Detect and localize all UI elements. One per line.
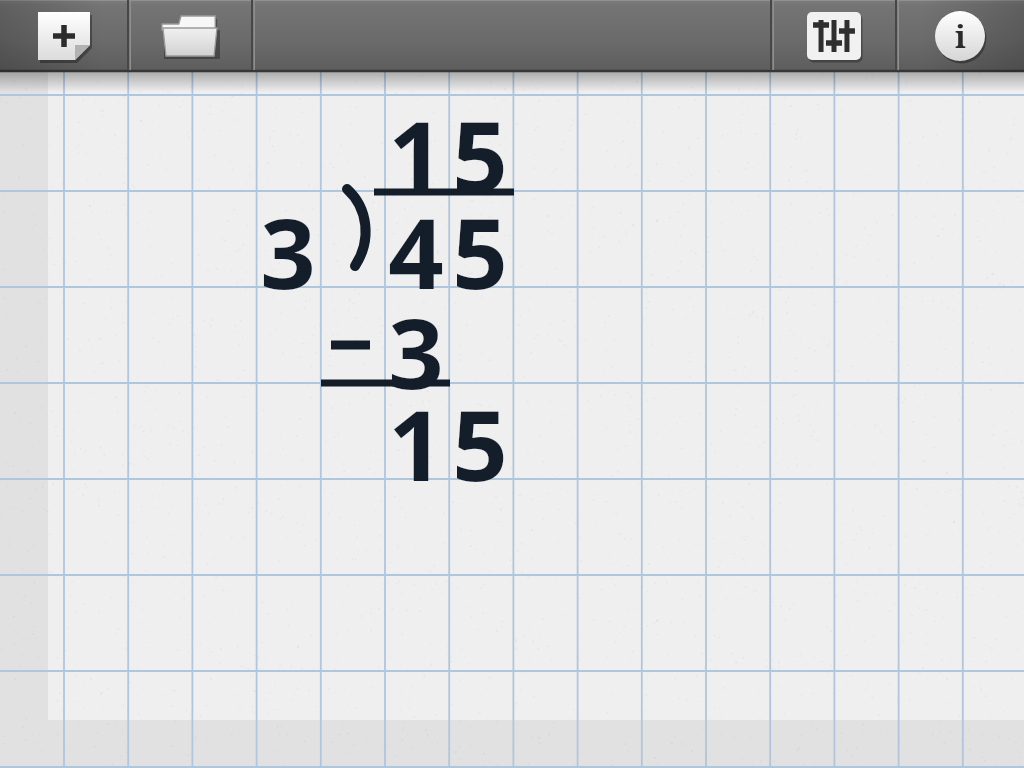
staticText: 5	[452, 377, 508, 497]
staticText: 1	[388, 88, 444, 208]
staticText: 5	[452, 88, 508, 208]
staticText: i	[955, 15, 966, 57]
staticText: 4	[388, 185, 444, 305]
staticText: 1	[388, 377, 444, 497]
staticText: 3	[260, 185, 316, 305]
staticText: 5	[452, 185, 508, 305]
staticText: 3	[388, 285, 444, 405]
button[interactable]: Open folder	[128, 0, 252, 72]
button[interactable]: Info	[896, 0, 1024, 72]
button[interactable]: New document	[0, 0, 128, 72]
button[interactable]: Settings	[771, 0, 896, 72]
